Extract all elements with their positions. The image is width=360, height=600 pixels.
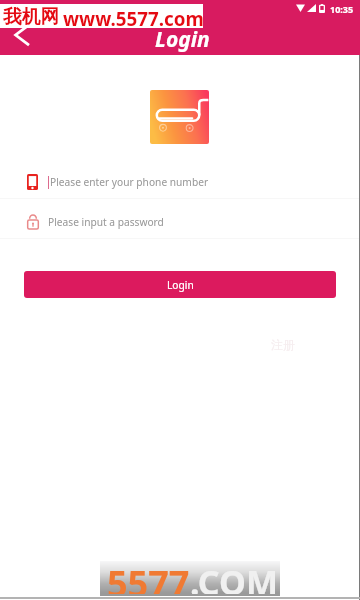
staticText: Please input a password [48, 215, 164, 229]
staticText: 注册 [271, 337, 295, 352]
staticText: Please enter your phone number [50, 175, 209, 189]
staticText: 10:35 [330, 3, 354, 15]
staticText: www.5577.com [63, 6, 204, 32]
staticText: 5577 [107, 559, 190, 594]
button[interactable]: Back [8, 20, 38, 52]
staticText: 我机网 [3, 5, 60, 29]
staticText: Login [155, 25, 210, 54]
button[interactable]: Please input a password [0, 202, 360, 242]
button[interactable]: Please enter your phone number [0, 162, 360, 202]
staticText: Login [167, 278, 194, 292]
button[interactable]: Login [24, 271, 336, 298]
staticText: .COM [190, 559, 278, 594]
